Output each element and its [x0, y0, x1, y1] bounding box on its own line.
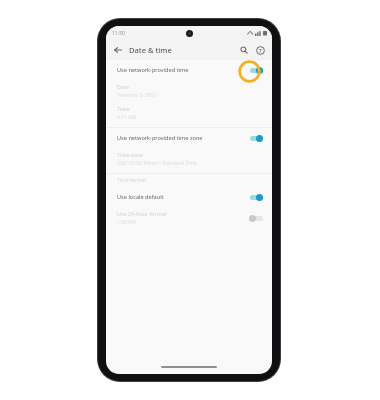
staticText: Time — [117, 105, 130, 112]
button[interactable]: Use network-provided time — [106, 60, 272, 80]
staticText: 1:00 PM — [117, 219, 136, 226]
button[interactable]: Toggle — [248, 64, 264, 76]
staticText: Use 24-hour format — [117, 210, 167, 217]
button[interactable]: Use 24-hour format — [106, 207, 272, 229]
staticText: Time zone — [117, 151, 144, 158]
staticText: GMT-05:00 Eastern Standard Time — [117, 160, 197, 167]
button[interactable]: Help — [253, 43, 267, 57]
staticText: Use network-provided time zone — [117, 134, 248, 142]
button[interactable]: Toggle — [248, 132, 264, 144]
button[interactable]: Use locale default — [106, 187, 272, 207]
staticText: ? — [259, 47, 262, 54]
staticText: Date — [117, 83, 129, 90]
staticText: Use locale default — [117, 193, 248, 201]
staticText: Time format — [117, 177, 146, 184]
staticText: 11:30 — [112, 30, 125, 37]
staticText: Use network-provided time — [117, 66, 248, 74]
button[interactable]: Toggle — [248, 212, 264, 224]
button[interactable]: Use network-provided time zone — [106, 128, 272, 148]
staticText: February 3, 2021 — [117, 92, 157, 99]
button[interactable]: Search — [237, 43, 251, 57]
button[interactable]: Toggle — [248, 191, 264, 203]
staticText: 9:11 AM — [117, 114, 136, 121]
button[interactable]: Back — [111, 43, 125, 57]
button[interactable]: Time zone — [106, 148, 272, 170]
button[interactable]: Date — [106, 80, 272, 102]
staticText: Date & time — [129, 45, 237, 55]
